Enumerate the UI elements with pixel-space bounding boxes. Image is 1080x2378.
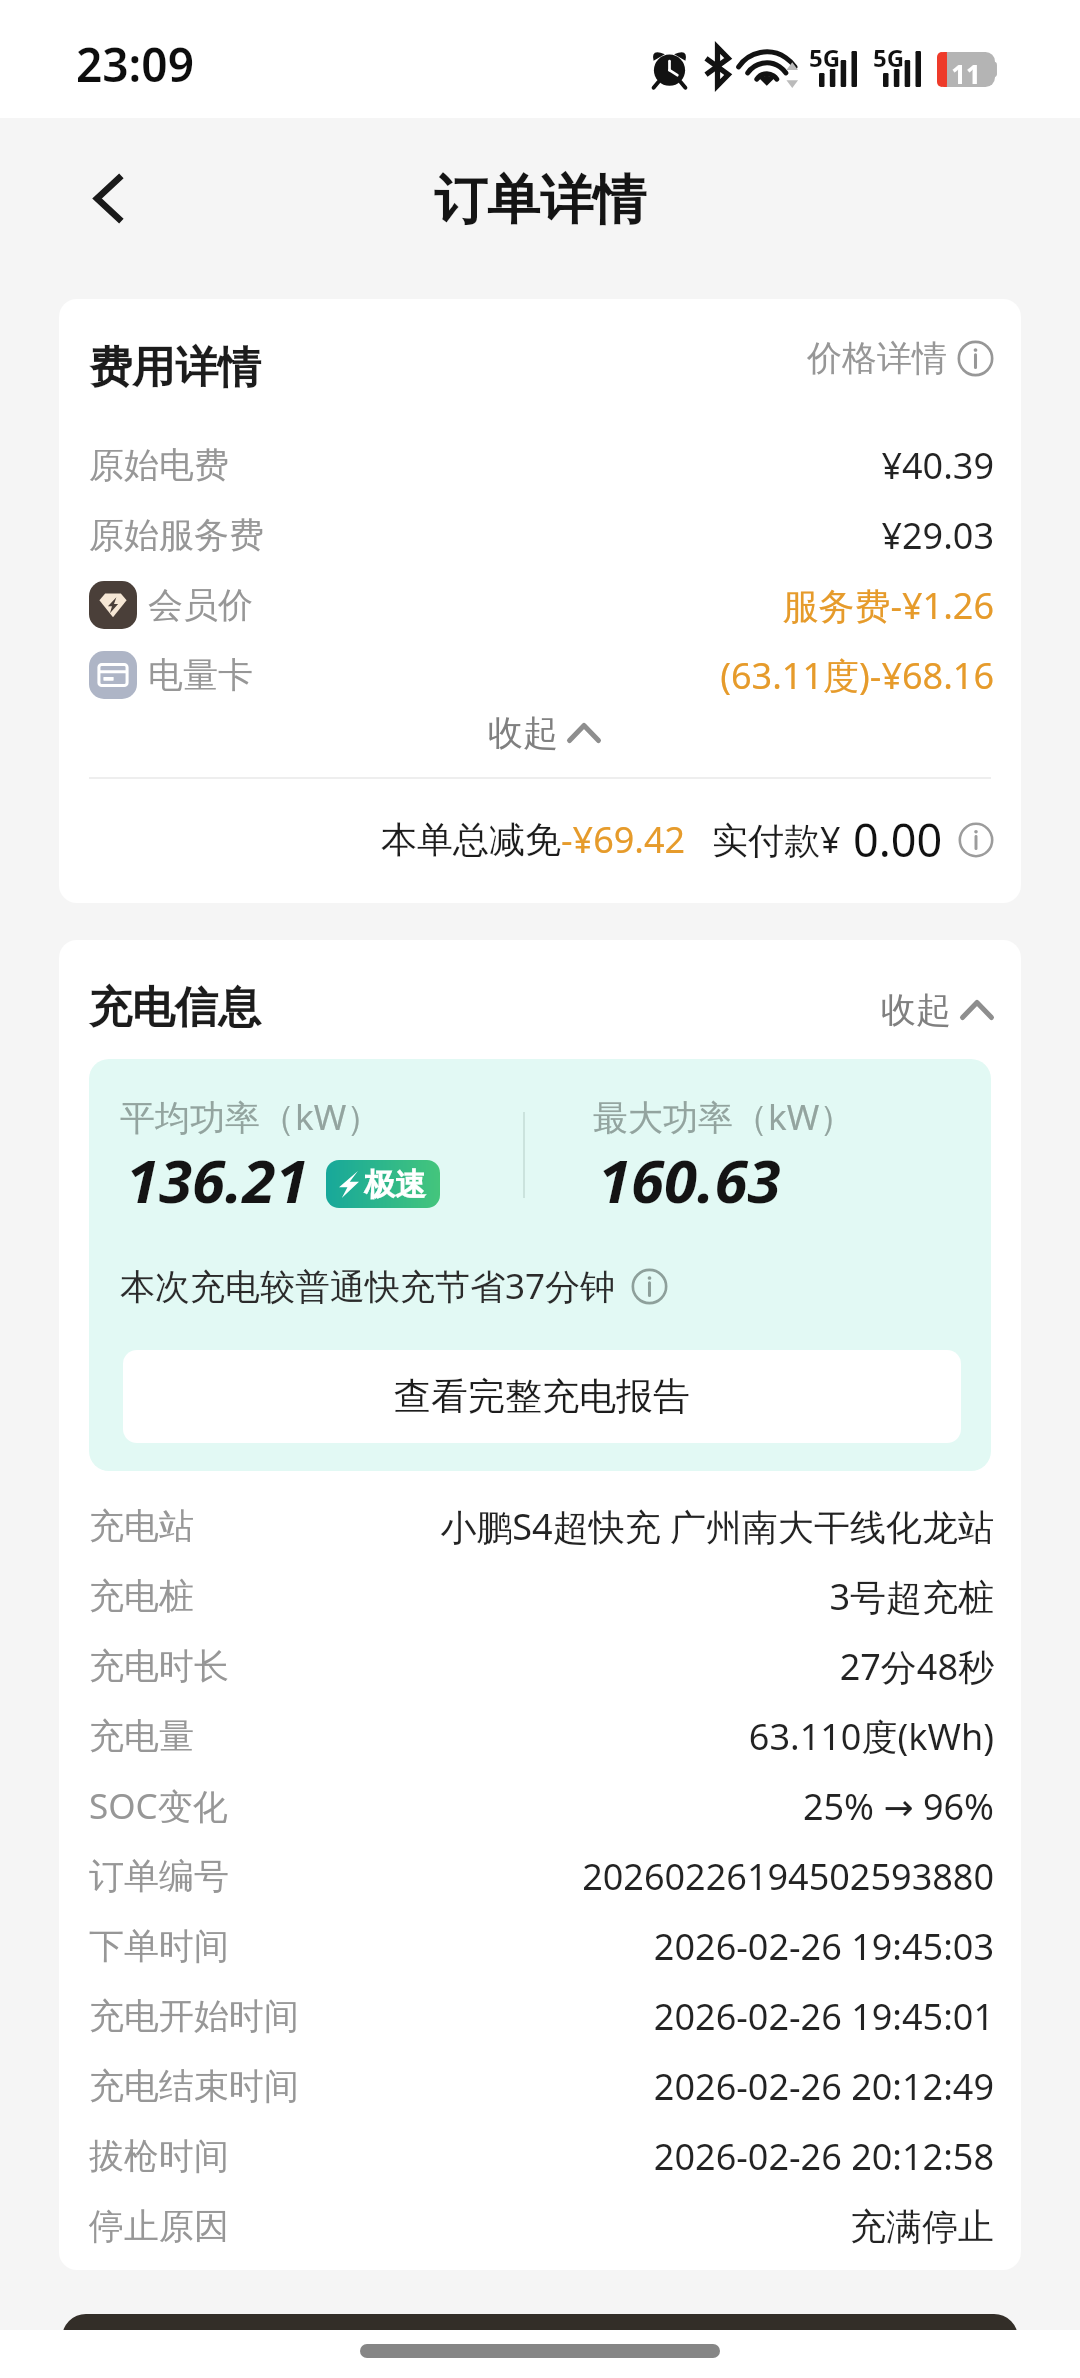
staticText: ¥29.03 xyxy=(881,511,994,560)
staticText: 收起 xyxy=(881,988,951,1032)
staticText: 充电时长 xyxy=(89,1644,229,1688)
staticText: (63.11度)-¥68.16 xyxy=(720,651,994,700)
staticText: 原始服务费 xyxy=(89,513,264,557)
staticText: 平均功率（kW） xyxy=(120,1093,382,1141)
staticText: 11 xyxy=(937,56,995,91)
staticText: 160.63 xyxy=(598,1139,781,1221)
staticText: 充电结束时间 xyxy=(89,2064,299,2108)
staticText: 下单时间 xyxy=(89,1924,229,1968)
staticText: 停止原因 xyxy=(89,2204,229,2248)
staticText: 最大功率（kW） xyxy=(593,1093,855,1141)
button[interactable]: Primary action xyxy=(62,2314,1018,2378)
staticText: 3号超充桩 xyxy=(829,1572,994,1621)
staticText: 本单总减免 xyxy=(381,817,561,862)
staticText: 充电信息 xyxy=(89,981,261,1035)
staticText: 2026-02-26 20:12:49 xyxy=(653,2062,994,2111)
button[interactable]: Charging savings info xyxy=(631,1268,668,1305)
staticText: 5G xyxy=(809,41,841,74)
staticText: 2026-02-26 19:45:03 xyxy=(653,1922,994,1971)
staticText: 23:09 xyxy=(76,33,194,96)
staticText: 5G xyxy=(873,41,905,74)
staticText: 充满停止 xyxy=(850,2204,994,2249)
staticText: 0.00 xyxy=(853,809,943,870)
staticText: SOC变化 xyxy=(89,1782,228,1830)
button[interactable]: 价格详情 xyxy=(807,336,994,380)
staticText: 27分48秒 xyxy=(839,1642,994,1691)
staticText: 实付款¥ xyxy=(712,815,841,864)
staticText: 小鹏S4超快充 广州南大干线化龙站 xyxy=(440,1502,994,1551)
staticText: 费用详情 xyxy=(89,341,261,395)
button[interactable]: Payment info xyxy=(958,822,994,858)
staticText: 充电桩 xyxy=(89,1574,194,1618)
staticText: 价格详情 xyxy=(807,336,947,380)
button[interactable]: 收起 xyxy=(881,988,994,1032)
staticText: 会员价 xyxy=(148,583,253,627)
staticText: 63.110度(kWh) xyxy=(748,1712,994,1761)
staticText: 20260226194502593880 xyxy=(582,1852,994,1901)
staticText: 原始电费 xyxy=(89,443,229,487)
staticText: 2026-02-26 19:45:01 xyxy=(653,1992,994,2041)
button[interactable]: 收起 xyxy=(488,711,601,755)
staticText: 收起 xyxy=(488,711,558,755)
button[interactable]: Back xyxy=(58,148,158,248)
staticText: 本次充电较普通快充节省37分钟 xyxy=(120,1262,616,1310)
staticText: 2026-02-26 20:12:58 xyxy=(653,2132,994,2181)
staticText: 订单详情 xyxy=(0,167,1080,234)
staticText: 136.21 xyxy=(126,1139,309,1221)
staticText: 拔枪时间 xyxy=(89,2134,229,2178)
staticText: 充电开始时间 xyxy=(89,1994,299,2038)
staticText: 订单编号 xyxy=(89,1854,229,1898)
staticText: 服务费-¥1.26 xyxy=(782,581,994,630)
staticText: ¥40.39 xyxy=(881,441,994,490)
button[interactable]: 查看完整充电报告 xyxy=(123,1350,961,1443)
staticText: 25% → 96% xyxy=(802,1782,994,1831)
staticText: 极速 xyxy=(364,1165,426,1204)
staticText: -¥69.42 xyxy=(561,815,686,864)
staticText: 充电站 xyxy=(89,1504,194,1548)
staticText: 电量卡 xyxy=(148,653,253,697)
staticText: 查看完整充电报告 xyxy=(394,1373,690,1420)
staticText: 充电量 xyxy=(89,1714,194,1758)
